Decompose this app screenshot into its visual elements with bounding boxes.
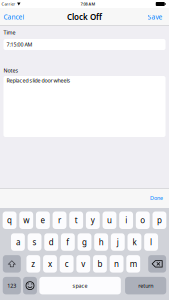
button[interactable]: space [39,277,121,294]
button[interactable]: v [76,255,90,273]
button[interactable]: o [136,211,150,229]
staticText: l [150,237,152,247]
button[interactable]: s [28,233,41,251]
button[interactable]: 123 [3,277,21,294]
staticText: Time [3,29,15,36]
button[interactable]: m [126,255,140,273]
button[interactable]: Cancel [0,8,28,26]
staticText: a [16,237,20,247]
staticText: 123 [7,282,16,289]
staticText: r [58,215,61,225]
staticText: f [66,237,69,247]
staticText: j [117,237,119,247]
button[interactable]: u [103,211,116,229]
staticText: y [91,215,95,225]
staticText: x [48,258,52,269]
staticText: q [7,215,12,225]
staticText: Clock Off [67,12,102,22]
button[interactable]: e [36,211,50,229]
button[interactable]: return [125,277,166,294]
staticText: t [75,215,78,225]
staticText: o [140,215,145,225]
button[interactable]: Shift [3,255,21,273]
button[interactable]: Save [142,8,169,26]
staticText: p [157,215,162,225]
staticText: Carrier [1,1,15,7]
staticText: b [97,258,102,269]
button[interactable]: g [78,233,91,251]
staticText: u [107,215,112,225]
staticText: z [31,258,35,269]
staticText: Notes [3,67,18,74]
button[interactable]: Done [144,188,169,207]
staticText: Done [150,194,163,202]
staticText: v [81,258,85,269]
staticText: 7:15:00 AM [6,41,32,48]
button[interactable]: w [19,211,33,229]
button[interactable]: 7:15:00 AM [3,39,165,50]
staticText: g [82,237,87,247]
button[interactable]: h [94,233,108,251]
button[interactable]: l [144,233,158,251]
staticText: s [33,237,37,247]
button[interactable]: p [152,211,166,229]
button[interactable]: i [119,211,133,229]
staticText: m [130,258,137,269]
staticText: c [65,258,69,269]
button[interactable]: a [11,233,25,251]
button[interactable]: f [61,233,75,251]
button[interactable]: j [111,233,125,251]
button[interactable]: Emoji [23,277,37,294]
staticText: space [73,282,88,289]
button[interactable]: r [53,211,66,229]
staticText: e [40,215,45,225]
staticText: Cancel [3,13,24,21]
staticText: h [99,237,104,247]
button[interactable]: z [26,255,40,273]
staticText: k [132,237,136,247]
staticText: 7:08 AM [80,1,95,7]
button[interactable]: q [3,211,16,229]
button[interactable]: Delete [148,255,166,273]
staticText: w [23,215,29,225]
staticText: Replaced slide door wheels [6,77,70,84]
staticText: Save [147,13,162,21]
button[interactable]: y [86,211,100,229]
staticText: d [49,237,54,247]
button[interactable]: c [60,255,73,273]
staticText: n [114,258,119,269]
button[interactable]: d [44,233,58,251]
button[interactable]: t [69,211,83,229]
button[interactable]: k [127,233,141,251]
staticText: return [138,282,153,289]
button[interactable]: b [93,255,107,273]
button[interactable]: x [43,255,57,273]
button[interactable]: n [110,255,123,273]
staticText: i [125,215,127,225]
